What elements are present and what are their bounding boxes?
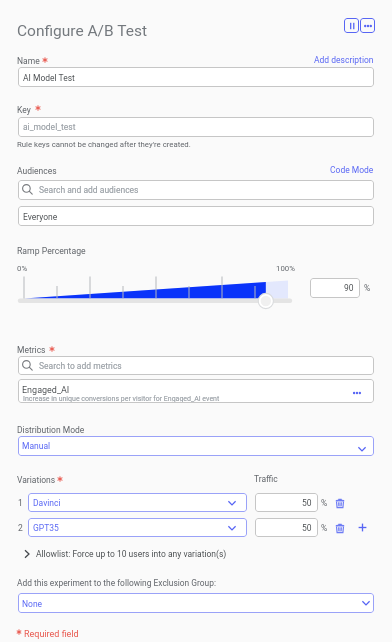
staticText: Add description (314, 55, 374, 65)
staticText: Code Mode (330, 165, 374, 175)
staticText: % (364, 283, 371, 293)
staticText: GPT35 (33, 523, 59, 533)
staticText: Name (17, 56, 40, 66)
button[interactable]: Allowlist: Force up to 10 users into any… (21, 548, 227, 560)
staticText: Audiences (17, 166, 57, 176)
staticText: Add this experiment to the following Exc… (17, 578, 216, 588)
button[interactable]: Delete variation (333, 521, 346, 534)
staticText: Configure A/B Test (17, 22, 147, 40)
button[interactable]: Davinci (28, 493, 247, 512)
staticText: 1 (18, 498, 23, 508)
staticText: 2 (18, 523, 23, 533)
button[interactable]: Search to add metrics (18, 356, 374, 375)
button[interactable]: AI Model Test (18, 67, 374, 87)
staticText: Allowlist: Force up to 10 users into any… (36, 549, 227, 559)
staticText: Increase in unique conversions per visit… (23, 395, 220, 403)
staticText: Everyone (23, 212, 58, 222)
button[interactable]: More options (360, 18, 375, 33)
staticText: AI Model Test (23, 73, 75, 83)
staticText: % (321, 523, 328, 533)
button[interactable]: Delete variation (333, 496, 346, 509)
staticText: Search and add audiences (39, 185, 139, 195)
button[interactable]: Manual (18, 436, 374, 456)
staticText: 100% (276, 264, 295, 273)
staticText: ai_model_test (23, 122, 76, 132)
button[interactable]: Code Mode (330, 165, 374, 175)
staticText: Rule keys cannot be changed after they'r… (17, 140, 191, 149)
button[interactable]: Engaged_AI (18, 379, 374, 403)
button[interactable]: Everyone (18, 206, 374, 226)
staticText: Traffic (254, 474, 278, 484)
staticText: Davinci (33, 498, 61, 508)
staticText: Key (17, 105, 31, 115)
button[interactable]: 50 (255, 518, 318, 537)
button[interactable]: ai_model_test (18, 117, 374, 137)
button[interactable]: Add description (314, 55, 374, 65)
staticText: Variations (17, 475, 56, 485)
staticText: 50 (302, 523, 312, 533)
button[interactable]: None (18, 593, 374, 613)
staticText: Search to add metrics (39, 361, 122, 371)
button[interactable]: Search and add audiences (18, 180, 374, 200)
staticText: Distribution Mode (17, 425, 85, 435)
staticText: 50 (302, 498, 312, 508)
staticText: Metrics (17, 345, 46, 355)
button[interactable]: 50 (255, 493, 318, 512)
button[interactable]: 90 (310, 278, 360, 298)
staticText: Required field (24, 629, 79, 640)
staticText: Engaged_AI (22, 385, 70, 396)
button[interactable]: Pause experiment (344, 18, 359, 33)
staticText: 90 (344, 283, 354, 293)
staticText: Ramp Percentage (17, 246, 86, 256)
button[interactable]: Metric options (350, 386, 364, 400)
staticText: Manual (22, 441, 51, 451)
staticText: % (321, 498, 328, 508)
staticText: None (22, 599, 43, 609)
button[interactable]: Add variation (356, 521, 369, 534)
button[interactable]: GPT35 (28, 518, 247, 537)
staticText: 0% (17, 264, 28, 273)
